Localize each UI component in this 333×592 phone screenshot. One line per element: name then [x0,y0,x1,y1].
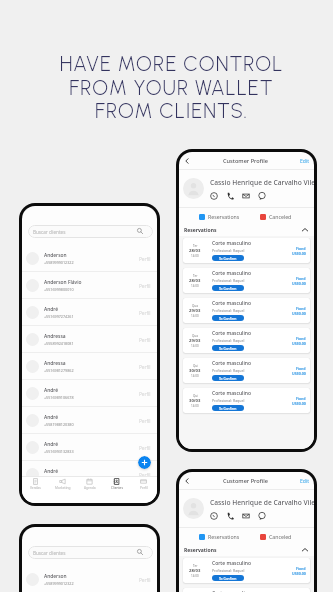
button[interactable]: Qui [183,388,310,413]
staticText: Clientes [111,486,123,490]
staticText: US$0.00 [292,251,306,256]
button[interactable]: To Confirm [212,315,244,321]
staticText: Corte masculino [212,240,251,247]
staticText: Qua [192,304,198,308]
staticText: +5516999912313 [44,476,74,481]
staticText: Fixed [296,566,306,571]
staticText: Reservations [184,547,301,554]
staticText: To Confirm [219,346,237,350]
button[interactable]: André [22,434,157,461]
staticText: Anderson [44,573,67,580]
button[interactable]: Buscar clientes [28,225,153,238]
button[interactable]: Call [226,192,234,200]
button[interactable]: Ter [183,588,310,592]
button[interactable]: Qua [183,328,310,353]
button[interactable]: Add client [138,456,151,469]
staticText: Edit [300,158,309,165]
staticText: Fixed [296,306,306,311]
button[interactable]: Canceled [260,213,292,220]
button[interactable]: Reservations [179,224,314,236]
staticText: Corte masculino [212,390,251,397]
button[interactable]: Email [242,192,250,200]
button[interactable]: To Confirm [212,375,244,381]
staticText: Fixed [296,276,306,281]
staticText: Profissional: Raquel [212,308,245,313]
button[interactable]: Ter [183,268,310,293]
staticText: Fixed [296,366,306,371]
button[interactable]: Message [258,192,266,200]
staticText: Customer Profile [223,157,268,165]
button[interactable]: Clientes [103,478,130,503]
button[interactable]: To Confirm [212,255,244,261]
button[interactable]: Anderson [22,566,157,592]
staticText: US$0.00 [292,281,306,286]
staticText: To Confirm [219,286,237,290]
button[interactable]: Edit [299,158,310,165]
button[interactable]: Canceled [260,533,292,540]
button[interactable]: Reservations [199,213,240,220]
button[interactable]: To Confirm [212,405,244,411]
button[interactable]: Ter [183,558,310,583]
staticText: Reservations [184,227,301,234]
staticText: Ter [193,244,198,248]
staticText: Profissional: Raquel [212,338,245,343]
button[interactable]: Edit [299,478,310,485]
button[interactable]: WhatsApp [210,512,218,520]
staticText: Corte masculino [212,300,251,307]
staticText: Cassio Henrique de Carvalho Vilela [210,498,314,507]
button[interactable]: Qui [183,358,310,383]
staticText: To Confirm [219,376,237,380]
button[interactable]: Back [182,476,192,486]
button[interactable]: Email [242,512,250,520]
staticText: 14:00 [191,404,199,408]
staticText: Buscar clientes [33,229,66,235]
button[interactable]: Andressa [22,326,157,353]
staticText: 14:00 [191,574,199,578]
button[interactable]: Back [182,156,192,166]
button[interactable]: Agenda [76,478,103,503]
button[interactable]: Reservations [199,533,240,540]
button[interactable]: Perfil [130,478,157,503]
button[interactable]: André [22,461,157,488]
button[interactable]: André [22,299,157,326]
staticText: 29/03 [189,308,201,314]
button[interactable]: André [22,407,157,434]
staticText: Edit [300,478,309,485]
staticText: Corte masculino [212,360,251,367]
staticText: US$0.00 [292,371,306,376]
button[interactable]: Anderson [22,245,157,272]
staticText: Canceled [269,213,292,220]
button[interactable]: Vendas [22,478,49,503]
staticText: +5516997274261 [44,314,74,319]
button[interactable]: Anderson Flávio [22,272,157,299]
staticText: Andressa [44,333,66,340]
staticText: +5516993132833 [44,449,74,454]
button[interactable]: Qua [183,298,310,323]
staticText: André [44,306,59,313]
staticText: US$0.00 [292,311,306,316]
staticText: 14:00 [191,314,199,318]
button[interactable]: To Confirm [212,575,244,581]
staticText: Perfil [139,337,151,343]
button[interactable]: Call [226,512,234,520]
button[interactable]: To Confirm [212,345,244,351]
button[interactable]: André [22,380,157,407]
staticText: 14:00 [191,374,199,378]
staticText: Marketing [55,486,71,490]
staticText: Ter [193,564,198,568]
staticText: Ter [193,274,198,278]
button[interactable]: Buscar clientes [28,546,153,559]
staticText: André [44,441,59,448]
button[interactable]: WhatsApp [210,192,218,200]
staticText: Andressa [44,360,66,367]
button[interactable]: To Confirm [212,285,244,291]
button[interactable]: Reservations [179,544,314,556]
staticText: André [44,387,59,394]
button[interactable]: Marketing [49,478,76,503]
staticText: Profissional: Raquel [212,278,245,283]
staticText: Reservations [208,533,240,540]
button[interactable]: Message [258,512,266,520]
button[interactable]: Andressa [22,353,157,380]
button[interactable]: Ter [183,238,310,263]
staticText: To Confirm [219,576,237,580]
